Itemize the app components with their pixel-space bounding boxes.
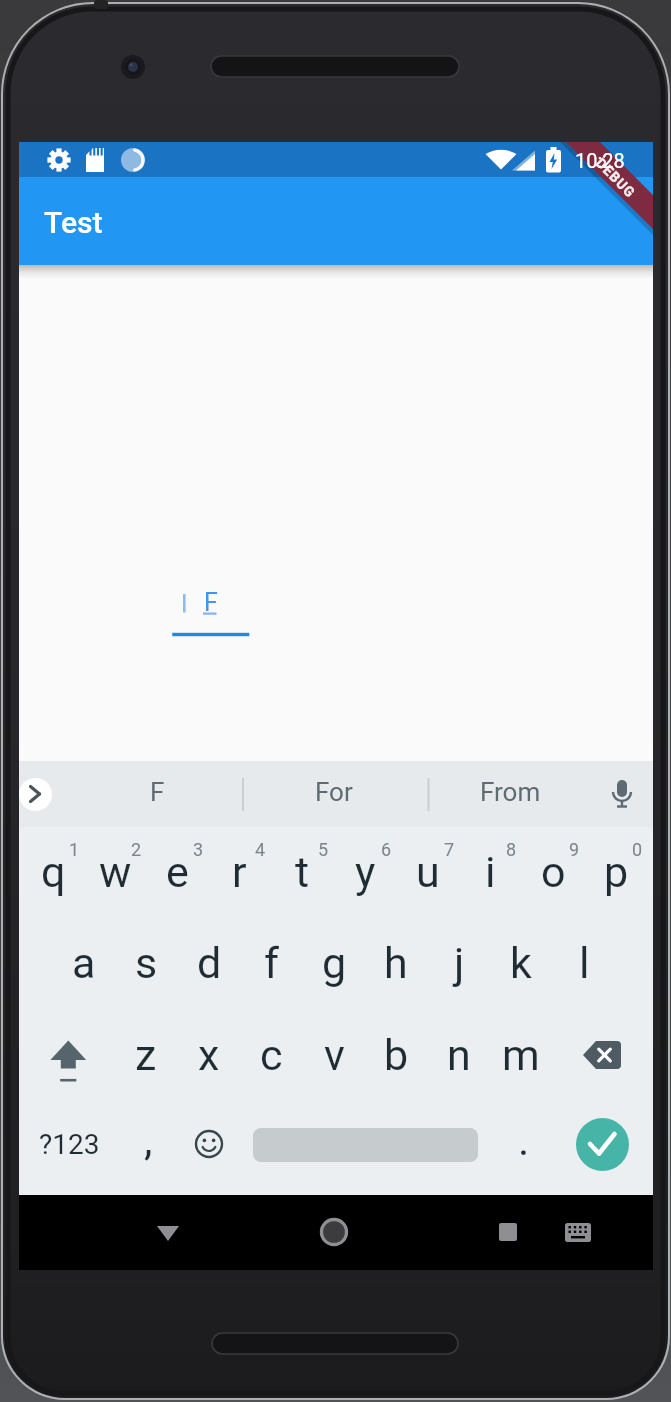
button[interactable]: c — [240, 1015, 302, 1095]
staticText: c — [260, 1030, 283, 1080]
staticText: 0 — [632, 839, 643, 860]
button[interactable]: r — [208, 832, 270, 912]
staticText: b — [384, 1030, 409, 1080]
button[interactable]: m — [490, 1015, 552, 1095]
staticText: F — [150, 777, 165, 807]
staticText: f — [264, 938, 279, 988]
staticText: y — [355, 847, 376, 897]
staticText: 9 — [569, 839, 580, 860]
staticText: t — [295, 847, 310, 897]
staticText: 10:28 — [575, 149, 625, 172]
button[interactable]: From — [435, 762, 585, 822]
staticText: u — [416, 847, 440, 897]
button[interactable]: p — [585, 832, 647, 912]
staticText: p — [604, 847, 629, 897]
staticText: From — [480, 777, 541, 807]
staticText: l — [579, 938, 590, 988]
staticText: n — [447, 1030, 471, 1080]
button[interactable] — [576, 1118, 629, 1171]
button[interactable]: x — [178, 1015, 240, 1095]
staticText: Test — [44, 205, 103, 240]
button[interactable]: h — [365, 923, 427, 1003]
staticText: j — [454, 938, 465, 988]
staticText: F — [204, 588, 218, 617]
staticText: q — [41, 847, 66, 897]
staticText: 1 — [69, 839, 80, 860]
staticText: 5 — [318, 839, 329, 860]
staticText: s — [135, 938, 158, 988]
staticText: x — [198, 1030, 220, 1080]
button[interactable] — [253, 1128, 478, 1162]
button[interactable]: , — [117, 1100, 179, 1180]
button[interactable]: t — [271, 832, 333, 912]
button[interactable]: y — [334, 832, 396, 912]
staticText: 6 — [381, 839, 392, 860]
staticText: v — [324, 1030, 345, 1080]
button[interactable] — [19, 778, 52, 811]
button[interactable]: j — [428, 923, 490, 1003]
staticText: o — [541, 847, 566, 897]
staticText: . — [518, 1115, 530, 1165]
staticText: i — [485, 847, 496, 897]
button[interactable]: f — [240, 923, 302, 1003]
button[interactable]: z — [115, 1015, 177, 1095]
staticText: DEBUG — [593, 155, 639, 201]
staticText: a — [72, 938, 96, 988]
button[interactable]: d — [178, 923, 240, 1003]
button[interactable]: b — [365, 1015, 427, 1095]
staticText: 4 — [255, 839, 266, 860]
button[interactable]: g — [303, 923, 365, 1003]
button[interactable]: w — [84, 832, 146, 912]
staticText: w — [99, 847, 132, 897]
button[interactable]: o — [522, 832, 584, 912]
button[interactable]: s — [115, 923, 177, 1003]
button[interactable]: ?123 — [24, 1104, 114, 1184]
button[interactable]: q — [22, 832, 84, 912]
button[interactable]: n — [428, 1015, 490, 1095]
button[interactable]: F — [97, 762, 217, 822]
button[interactable]: For — [259, 762, 409, 822]
staticText: m — [502, 1030, 540, 1080]
staticText: 3 — [193, 839, 204, 860]
staticText: 8 — [506, 839, 517, 860]
button[interactable]: v — [303, 1015, 365, 1095]
staticText: 2 — [131, 839, 142, 860]
button[interactable] — [19, 177, 653, 265]
staticText: z — [135, 1030, 157, 1080]
button[interactable]: i — [459, 832, 521, 912]
staticText: , — [144, 1115, 153, 1165]
staticText: g — [322, 938, 347, 988]
staticText: e — [166, 847, 189, 897]
button[interactable]: a — [53, 923, 115, 1003]
staticText: d — [197, 938, 222, 988]
staticText: k — [510, 938, 532, 988]
button[interactable]: . — [493, 1100, 555, 1180]
button[interactable]: e — [146, 832, 208, 912]
staticText: 7 — [444, 839, 455, 860]
staticText: h — [384, 938, 408, 988]
button[interactable]: k — [490, 923, 552, 1003]
button[interactable]: l — [553, 923, 615, 1003]
staticText: r — [232, 847, 247, 897]
button[interactable]: u — [397, 832, 459, 912]
staticText: ?123 — [39, 1128, 100, 1161]
staticText: For — [315, 777, 353, 807]
